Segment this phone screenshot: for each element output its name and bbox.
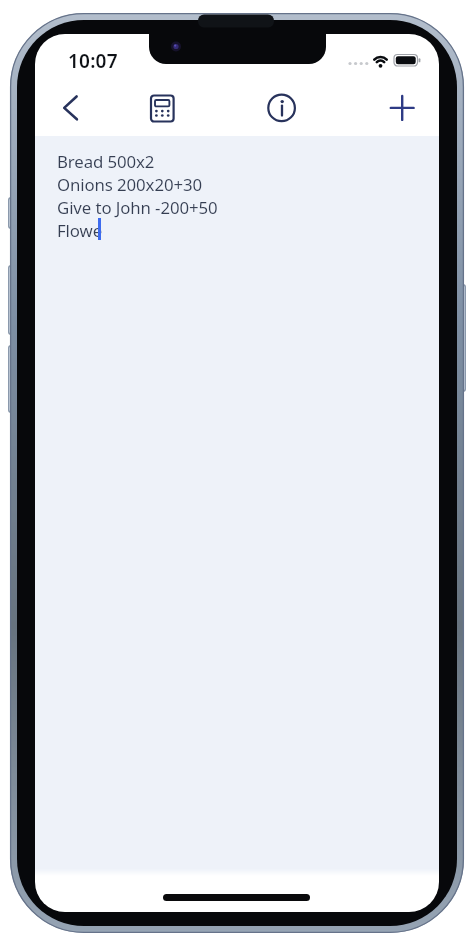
button[interactable] — [384, 89, 421, 127]
button[interactable] — [146, 90, 179, 126]
button[interactable] — [55, 88, 87, 126]
button[interactable] — [35, 136, 439, 876]
staticText: 10:07 — [68, 48, 118, 74]
button[interactable] — [264, 90, 300, 126]
staticText: Bread 500x2 Onions 200x20+30 Give to Joh… — [57, 150, 218, 242]
